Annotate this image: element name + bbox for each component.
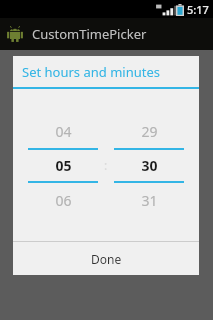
staticText: Set hours and minutes [22,63,160,81]
staticText: : [104,157,108,173]
staticText: 06 [55,191,72,210]
staticText: 30 [141,156,158,175]
staticText: CustomTimePicker [32,25,147,43]
staticText: Done [91,251,122,267]
button[interactable]: 29 [114,114,184,217]
button[interactable]: 04 [28,114,98,217]
staticText: 5:17 [187,2,209,17]
staticText: 04 [55,122,72,141]
staticText: 31 [141,191,158,210]
staticText: 05 [55,156,72,175]
button[interactable]: Done [13,242,199,275]
staticText: 29 [141,122,158,141]
